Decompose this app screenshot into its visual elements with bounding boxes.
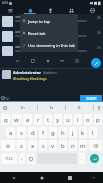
staticText: Use streaming in this tab (28, 43, 75, 48)
button[interactable]: Recents (56, 172, 84, 183)
button[interactable]: i (74, 114, 82, 125)
staticText: k (81, 129, 85, 137)
button[interactable]: Favourite (44, 57, 52, 65)
button[interactable]: Voice typing (0, 102, 9, 113)
button[interactable]: Boost (29, 57, 37, 65)
button[interactable]: Notifications (40, 6, 61, 14)
button[interactable]: m (79, 140, 87, 151)
staticText: 2h (97, 31, 101, 35)
staticText: b (61, 142, 65, 150)
button[interactable]: b (59, 140, 67, 151)
button[interactable]: 2h (0, 30, 103, 45)
button[interactable]: x (28, 140, 37, 151)
button[interactable]: Reply (14, 57, 22, 65)
staticText: q (4, 116, 8, 124)
staticText: m (80, 142, 86, 150)
button[interactable]: . (79, 153, 85, 164)
button[interactable]: w (12, 114, 21, 125)
button[interactable]: Is (38, 102, 65, 113)
button[interactable]: Bookmark (73, 57, 81, 65)
staticText: u (66, 116, 70, 124)
button[interactable]: d (28, 127, 37, 138)
button[interactable]: l (89, 127, 97, 138)
button[interactable]: g (49, 127, 57, 138)
staticText: It (78, 105, 81, 110)
button[interactable]: Backspace (89, 140, 102, 151)
button[interactable]: Back (0, 172, 28, 183)
button[interactable]: z (17, 140, 26, 151)
staticText: p (96, 116, 100, 124)
button[interactable]: c (39, 140, 47, 151)
button[interactable]: Globe (82, 6, 103, 14)
staticText: x (31, 142, 35, 150)
button[interactable]: Jump to top (20, 15, 78, 27)
button[interactable]: q (1, 114, 10, 125)
staticText: r (37, 116, 40, 124)
staticText: 6:03 (2, 1, 8, 5)
button[interactable]: Emoji (27, 153, 35, 164)
button[interactable]: Hide keyboard (84, 172, 103, 183)
staticText: @admin (43, 70, 57, 75)
button[interactable]: t (44, 114, 52, 125)
staticText: , (21, 155, 23, 162)
button[interactable]: Groups (61, 6, 82, 14)
button[interactable]: Home (20, 6, 40, 14)
button[interactable]: f (39, 127, 47, 138)
button[interactable]: Compose (91, 58, 101, 68)
staticText: s (20, 129, 23, 137)
staticText: In (6, 96, 10, 101)
button[interactable]: h (59, 127, 67, 138)
button[interactable]: o (84, 114, 92, 125)
button[interactable]: n (69, 140, 77, 151)
staticText: y (56, 116, 60, 124)
staticText: c (42, 142, 45, 150)
staticText: TOOT! (86, 96, 97, 101)
button[interactable]: r (34, 114, 42, 125)
staticText: t (47, 116, 50, 124)
staticText: a (9, 129, 13, 137)
button[interactable]: 2h (0, 15, 103, 30)
staticText: j (72, 129, 74, 137)
button[interactable]: Menu (0, 6, 20, 14)
staticText: d (31, 129, 35, 137)
staticText: o (86, 116, 90, 124)
staticText: ?123 (5, 156, 13, 161)
staticText: g (51, 129, 55, 137)
button[interactable]: Home (28, 172, 56, 183)
staticText: h (61, 129, 65, 137)
button[interactable]: Enter (90, 154, 99, 163)
staticText: Administrator (13, 70, 42, 75)
button[interactable]: In (9, 102, 37, 113)
button[interactable]: Shift (1, 140, 15, 151)
staticText: Jump to top (28, 19, 51, 24)
staticText: f (42, 129, 45, 137)
staticText: i (77, 116, 79, 124)
button[interactable]: p (94, 114, 102, 125)
button[interactable]: a (6, 127, 15, 138)
button[interactable]: Administrator (0, 69, 103, 82)
button[interactable]: Microphone (94, 102, 103, 113)
button[interactable]: Quote (58, 57, 66, 65)
button[interactable]: s (17, 127, 26, 138)
staticText: 2h (97, 16, 101, 20)
button[interactable]: It (66, 102, 93, 113)
button[interactable]: , (19, 153, 25, 164)
button[interactable]: TOOT! (80, 95, 102, 101)
staticText: . (81, 155, 83, 162)
button[interactable]: v (49, 140, 57, 151)
staticText: #hashtag #hashtags (13, 76, 47, 81)
staticText: w (14, 116, 19, 124)
button[interactable]: Reset tab (20, 27, 78, 39)
button[interactable]: Use streaming in this tab (20, 39, 78, 51)
other: Globe (1, 96, 5, 100)
button[interactable]: ?123 (1, 153, 17, 164)
button[interactable]: k (79, 127, 87, 138)
button[interactable]: u (64, 114, 72, 125)
button[interactable]: j (69, 127, 77, 138)
button[interactable]: y (54, 114, 62, 125)
staticText: Is (50, 105, 54, 110)
staticText: e (26, 116, 30, 124)
button[interactable]: 2h (0, 45, 103, 57)
button[interactable]: e (23, 114, 32, 125)
